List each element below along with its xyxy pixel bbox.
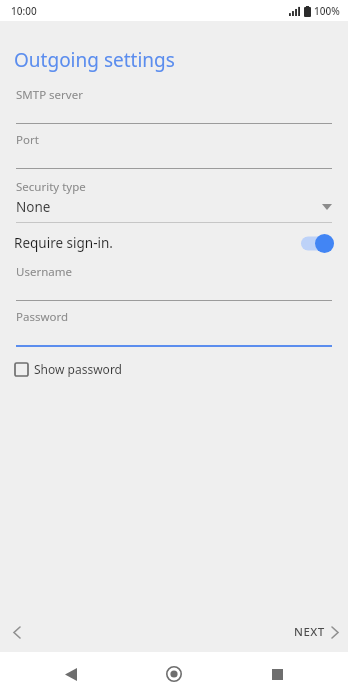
button[interactable]: Require sign-in. bbox=[0, 225, 348, 261]
other: Require sign-in toggle, on bbox=[301, 234, 334, 253]
staticText: Require sign-in. bbox=[14, 234, 301, 252]
staticText: Username bbox=[16, 264, 72, 280]
button[interactable]: Previous bbox=[0, 615, 34, 649]
button[interactable]: Home bbox=[158, 658, 190, 690]
button[interactable]: Back bbox=[56, 659, 86, 689]
staticText: Password bbox=[16, 309, 69, 325]
button[interactable]: Show password bbox=[0, 358, 132, 380]
staticText: 10:00 bbox=[11, 4, 37, 18]
button[interactable]: Security type None bbox=[0, 179, 348, 223]
button[interactable]: Recent apps bbox=[262, 659, 292, 689]
staticText: Show password bbox=[34, 361, 122, 377]
button[interactable]: NEXT bbox=[284, 616, 348, 648]
button[interactable]: Username bbox=[0, 264, 348, 301]
staticText: 100% bbox=[314, 4, 340, 18]
button[interactable]: SMTP server bbox=[0, 87, 348, 124]
staticText: Outgoing settings bbox=[14, 47, 175, 73]
staticText: Security type bbox=[16, 179, 86, 195]
staticText: NEXT bbox=[294, 624, 325, 640]
staticText: SMTP server bbox=[16, 87, 83, 103]
button[interactable]: Port bbox=[0, 132, 348, 169]
staticText: Port bbox=[16, 132, 39, 148]
button[interactable]: Password bbox=[0, 309, 348, 347]
staticText: None bbox=[16, 198, 322, 216]
